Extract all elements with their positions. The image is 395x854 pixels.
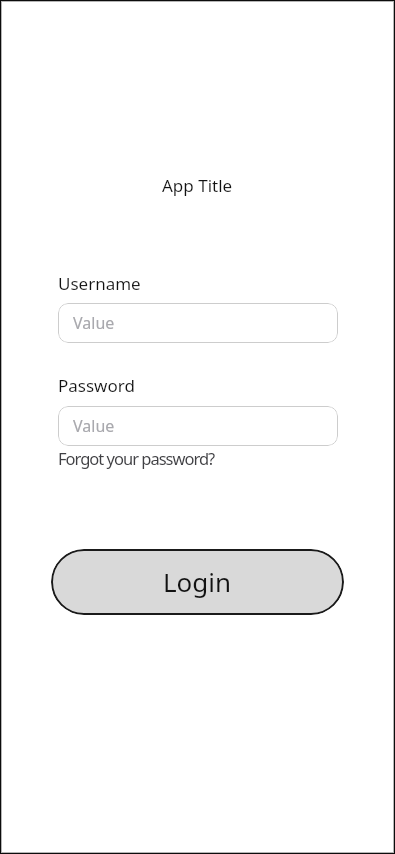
staticText: Username [58, 272, 141, 295]
staticText: App Title [162, 174, 233, 197]
staticText: Value [73, 312, 115, 334]
staticText: Login [163, 564, 232, 599]
button[interactable]: Value [58, 303, 338, 343]
button[interactable]: Login [51, 549, 344, 615]
staticText: Password [58, 374, 135, 397]
button[interactable]: Forgot your password? [58, 447, 215, 469]
staticText: Value [73, 415, 115, 437]
button[interactable]: Value [58, 406, 338, 446]
